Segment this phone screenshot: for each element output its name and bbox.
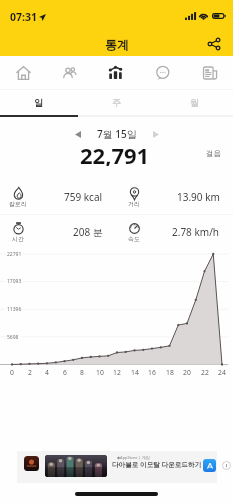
staticText: 통계 [105,37,129,52]
staticText: 16 [148,368,156,377]
staticText: 22 [201,368,209,377]
staticText: 6 [63,368,67,377]
staticText: 속도 [128,235,140,243]
staticText: 22791 [7,251,22,258]
button[interactable]: Previous day [67,124,89,144]
staticText: 10 [96,368,104,377]
button[interactable]: 일 [0,90,77,115]
staticText: 7월 15일 [97,127,137,141]
button[interactable]: 속도 [116,215,233,249]
button[interactable]: Home [0,56,46,89]
staticText: 20 [183,368,191,377]
button[interactable]: ◆AppStore | 게임 [17,451,217,483]
staticText: 시간 [12,235,24,243]
staticText: 칼로리 [9,200,27,208]
staticText: 2.78 km/h [172,225,220,239]
staticText: 걸음 [206,149,221,158]
staticText: 월 [190,97,199,108]
button[interactable]: 월 [155,90,233,115]
staticText: 759 kcal [64,190,103,204]
staticText: 13.90 km [177,190,220,204]
button[interactable]: News [186,56,233,89]
button[interactable]: 시간 [0,215,116,249]
button[interactable]: 칼로리 [0,180,116,214]
staticText: 11396 [7,306,22,313]
button[interactable]: Get on App Store [203,459,216,472]
staticText: 14 [131,368,139,377]
button[interactable]: Ad information [220,459,233,472]
staticText: 17093 [7,278,22,285]
button[interactable]: 주 [77,90,155,115]
staticText: 5698 [7,334,19,341]
staticText: 07:31 [10,10,37,24]
staticText: 8 [80,368,84,377]
button[interactable]: Chat [139,56,186,89]
staticText: 24 [218,368,226,377]
staticText: 208 분 [73,225,103,239]
button[interactable]: Statistics [92,56,139,89]
staticText: 일 [34,97,43,108]
staticText: ◆AppStore | 게임 [117,455,150,460]
staticText: 다아블로 이모탈 다운로드하기 [112,460,202,469]
staticText: 22,791 [80,140,150,166]
button[interactable]: Friends [46,56,92,89]
button[interactable]: Next day [145,124,167,144]
button[interactable]: 거리 [116,180,233,214]
staticText: 18 [166,368,174,377]
staticText: 4 [45,368,49,377]
staticText: 12 [113,368,121,377]
staticText: 0 [10,368,14,377]
staticText: 거리 [128,200,140,208]
staticText: 2 [28,368,32,377]
button[interactable]: Share [202,32,225,55]
staticText: 주 [112,97,121,108]
